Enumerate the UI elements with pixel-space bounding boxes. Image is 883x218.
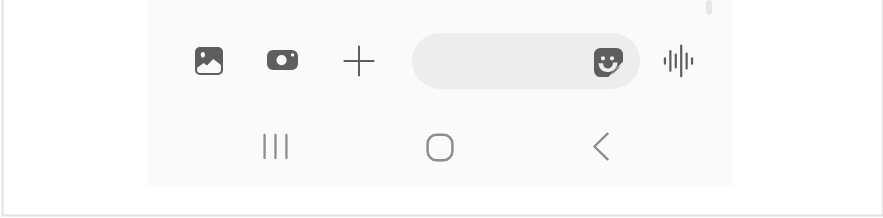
button[interactable]: Recents xyxy=(262,132,289,161)
button[interactable]: Voice input xyxy=(663,44,694,78)
button[interactable]: Stickers xyxy=(594,48,623,77)
button[interactable] xyxy=(412,33,640,89)
button[interactable]: Home xyxy=(425,133,455,162)
button[interactable]: Add xyxy=(343,45,375,77)
button[interactable]: Camera xyxy=(267,50,298,70)
button[interactable]: Gallery xyxy=(195,47,223,75)
button[interactable]: Back xyxy=(590,132,612,161)
